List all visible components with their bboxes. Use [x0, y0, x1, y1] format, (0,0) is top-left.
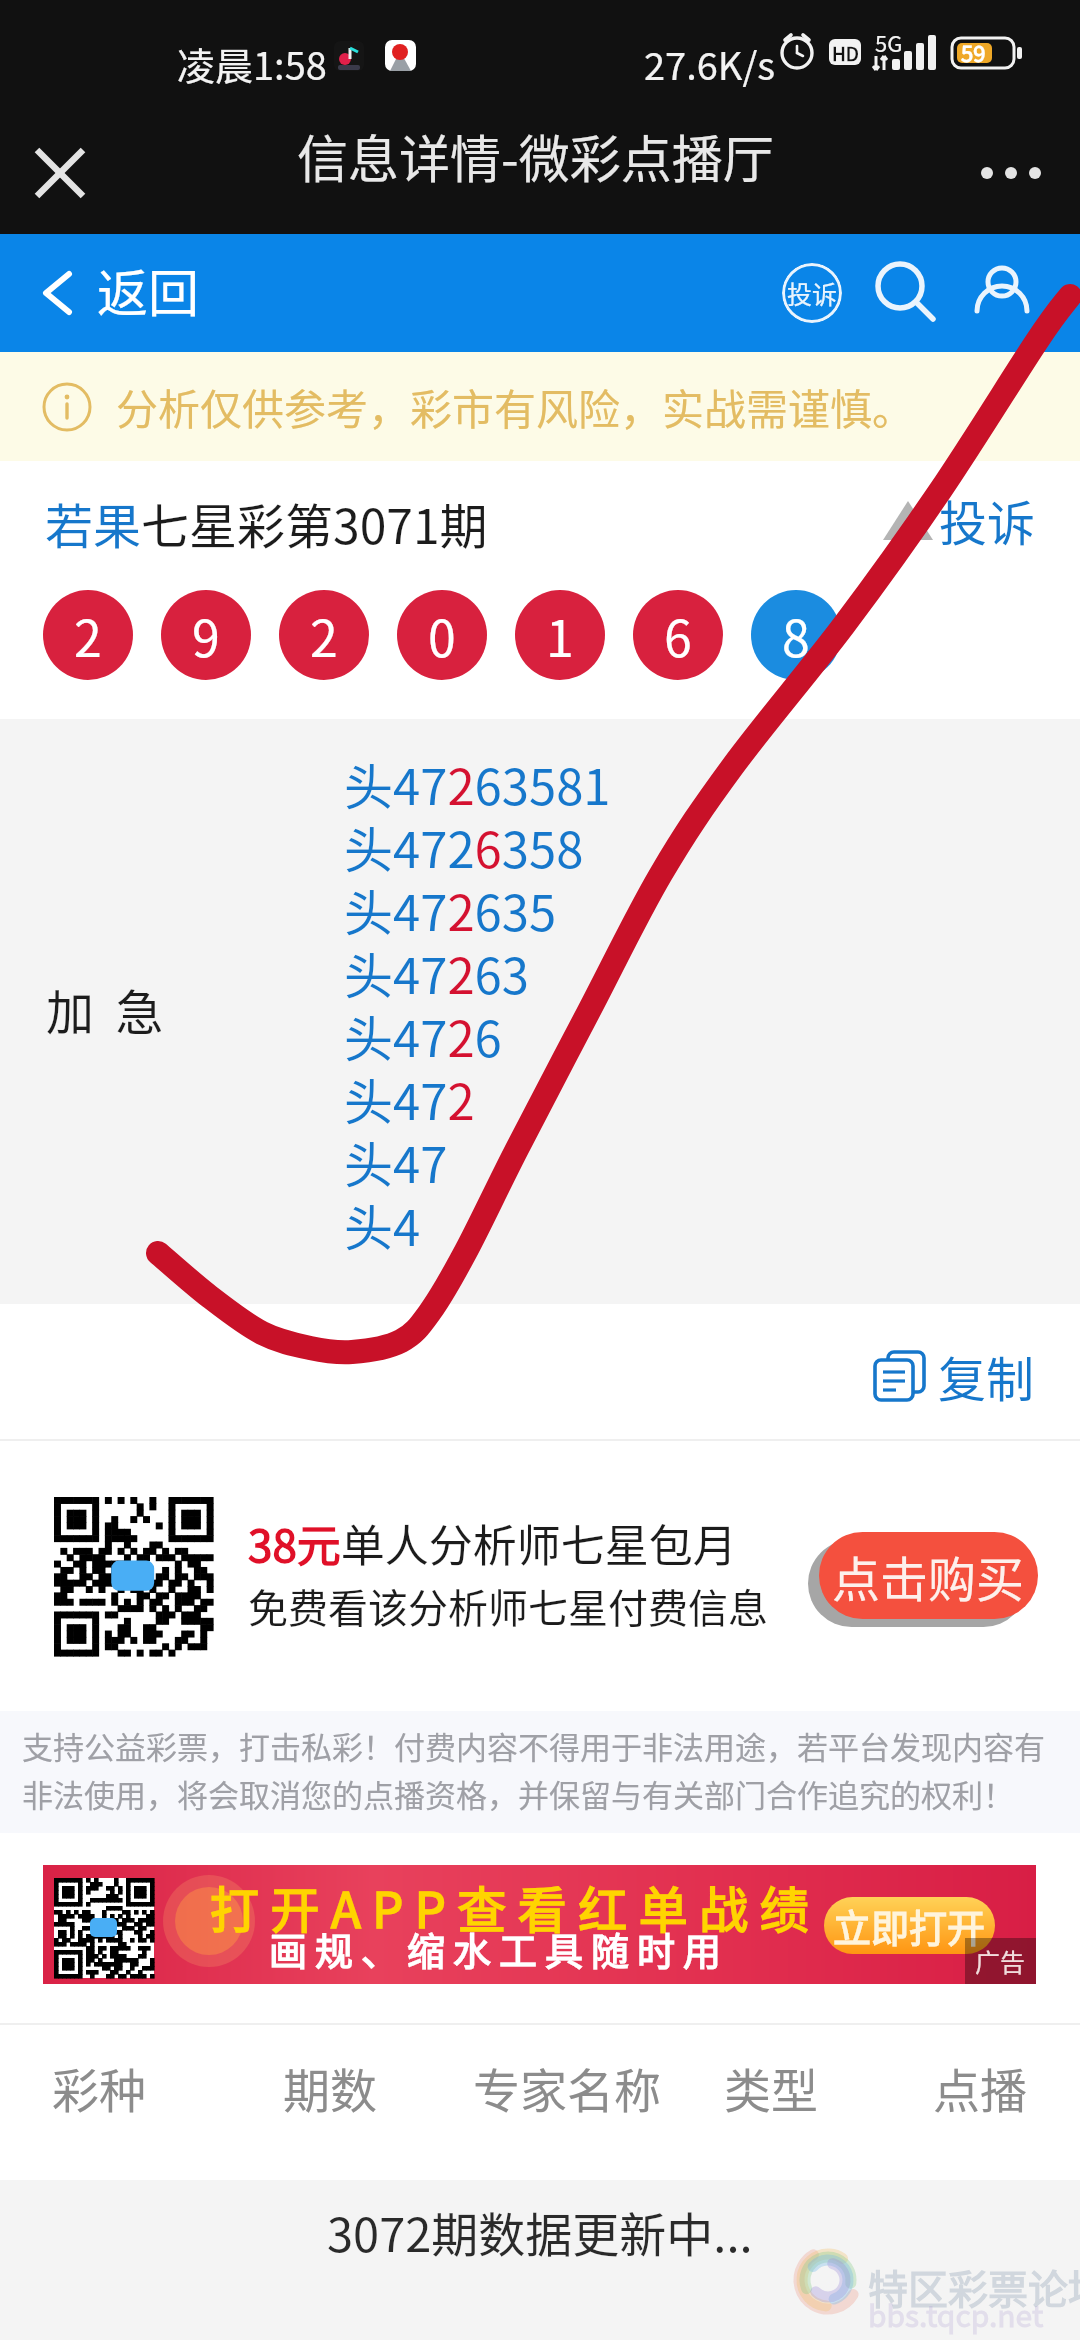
- staticText: 5G: [875, 26, 903, 58]
- staticText: 彩种: [52, 2053, 146, 2121]
- staticText: 返回: [97, 253, 200, 327]
- staticText: 点击购买: [832, 1541, 1025, 1611]
- staticText: 59: [961, 36, 986, 68]
- staticText: 3072期数据更新中...: [327, 2197, 753, 2265]
- staticText: 支持公益彩票，打击私彩！付费内容不得用于非法用途，若平台发现内容有非法使用，将会…: [22, 1723, 1058, 1816]
- button[interactable]: 打开APP查看红单战绩: [43, 1865, 1036, 1984]
- button[interactable]: 投诉: [767, 248, 857, 338]
- staticText: 投诉: [787, 275, 838, 311]
- staticText: HD: [832, 39, 859, 65]
- button[interactable]: 点播: [870, 2052, 1080, 2122]
- staticText: 2: [74, 599, 102, 671]
- button[interactable]: Search: [861, 248, 951, 338]
- staticText: 头4: [344, 1189, 421, 1260]
- staticText: 打开APP查看红单战绩: [210, 1871, 821, 1942]
- staticText: 特区彩票论坛: [868, 2258, 1080, 2316]
- button[interactable]: 类型: [661, 2052, 881, 2122]
- staticText: 类型: [724, 2053, 818, 2121]
- button[interactable]: 复制: [872, 1341, 1035, 1411]
- button[interactable]: More options: [966, 128, 1056, 218]
- staticText: 9: [192, 599, 220, 671]
- staticText: 头47: [344, 1126, 448, 1197]
- staticText: 头472635: [344, 874, 557, 945]
- button[interactable]: 专家名称: [457, 2052, 677, 2122]
- staticText: 8: [782, 599, 810, 671]
- staticText: 2: [310, 599, 338, 671]
- staticText: 立即打开: [833, 1898, 986, 1953]
- staticText: bbs.tqcp.net: [868, 2292, 1044, 2335]
- staticText: 加 急: [46, 974, 164, 1044]
- staticText: 画规、缩水工具随时用: [269, 1921, 730, 1976]
- staticText: 免费看该分析师七星付费信息: [248, 1577, 768, 1635]
- staticText: 头4726: [344, 1000, 502, 1071]
- staticText: 0: [428, 599, 456, 671]
- staticText: 期数: [283, 2053, 377, 2121]
- staticText: 凌晨1:58: [177, 36, 327, 91]
- staticText: 6: [664, 599, 692, 671]
- staticText: 信息详情-微彩点播厅: [297, 119, 774, 193]
- staticText: 头47263581: [344, 748, 611, 819]
- button[interactable]: 投诉: [881, 485, 1036, 555]
- button[interactable]: 点击购买: [819, 1532, 1038, 1619]
- staticText: 头47263: [344, 937, 529, 1008]
- button[interactable]: Close: [20, 133, 100, 213]
- staticText: 复制: [938, 1341, 1035, 1411]
- staticText: 点播: [933, 2053, 1027, 2121]
- staticText: 分析仅供参考，彩市有风险，实战需谨慎。: [116, 376, 915, 437]
- staticText: 头4726358: [344, 811, 584, 882]
- staticText: 广告: [975, 1943, 1026, 1979]
- staticText: 投诉: [939, 485, 1036, 555]
- button[interactable]: 返回: [0, 234, 270, 352]
- staticText: 38元单人分析师七星包月: [248, 1511, 737, 1575]
- staticText: 若果七星彩第3071期: [45, 488, 488, 558]
- staticText: 头472: [344, 1063, 475, 1134]
- button[interactable]: 期数: [220, 2052, 440, 2122]
- button[interactable]: 彩种: [0, 2052, 209, 2122]
- staticText: 专家名称: [473, 2053, 661, 2121]
- staticText: 27.6K/s: [644, 36, 776, 91]
- button[interactable]: Profile: [957, 248, 1047, 338]
- staticText: 1: [546, 599, 574, 671]
